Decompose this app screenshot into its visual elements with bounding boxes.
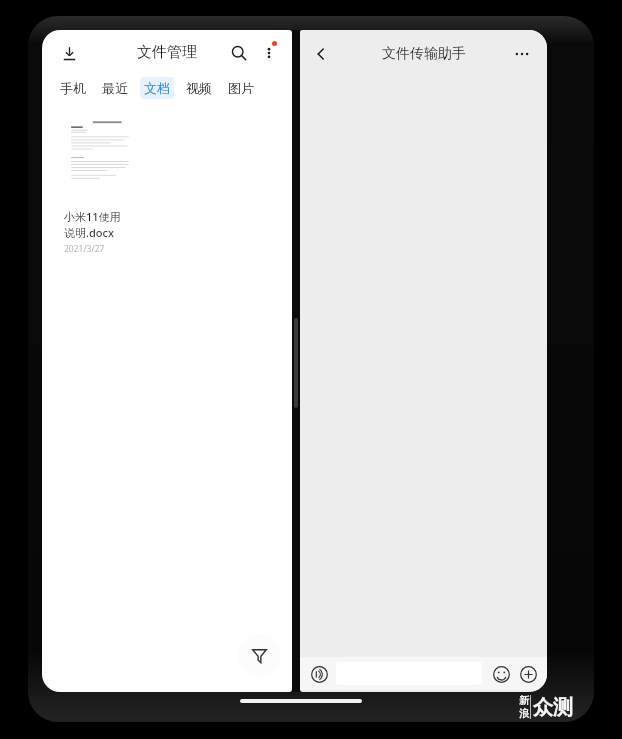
- button[interactable]: Downloads: [54, 38, 84, 68]
- button[interactable]: 视频: [182, 77, 216, 99]
- button[interactable]: 小米11使用 说明.docx: [64, 115, 148, 255]
- staticText: 众测: [533, 695, 573, 720]
- button[interactable]: Add: [517, 663, 539, 685]
- button[interactable]: Filter: [238, 634, 280, 676]
- staticText: 文档: [144, 80, 170, 96]
- staticText: 手机: [60, 80, 86, 96]
- staticText: 文件传输助手: [382, 45, 466, 63]
- staticText: 文件管理: [137, 43, 197, 62]
- button[interactable]: Emoji: [490, 663, 512, 685]
- button[interactable]: Back: [306, 39, 336, 69]
- button[interactable]: More options: [254, 38, 284, 68]
- staticText: 2021/3/27: [64, 243, 105, 255]
- button[interactable]: 图片: [224, 77, 258, 99]
- button[interactable]: 手机: [56, 77, 90, 99]
- staticText: 视频: [186, 80, 212, 96]
- button[interactable]: 最近: [98, 77, 132, 99]
- staticText: 图片: [228, 80, 254, 96]
- button[interactable]: 文档: [140, 77, 174, 99]
- button[interactable]: Voice message: [308, 663, 330, 685]
- staticText: 最近: [102, 80, 128, 96]
- button[interactable]: Search: [224, 38, 254, 68]
- staticText: 浪: [519, 707, 529, 720]
- button[interactable]: More: [507, 39, 537, 69]
- staticText: 小米11使用 说明.docx: [64, 209, 121, 240]
- staticText: 新: [519, 694, 529, 707]
